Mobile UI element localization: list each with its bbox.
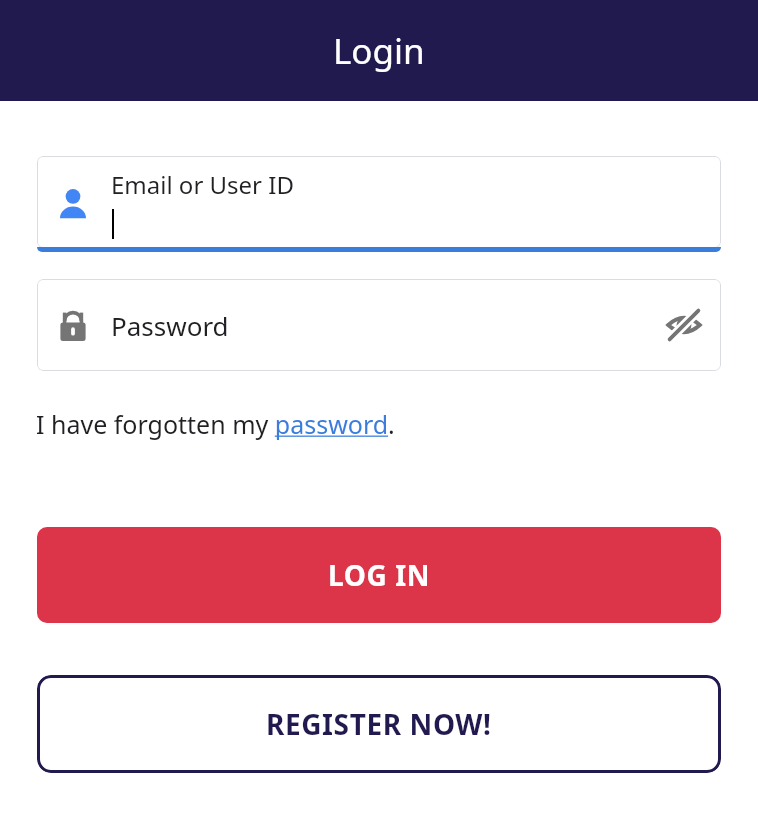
staticText: I have forgotten my password. — [36, 407, 395, 441]
other: Password — [52, 304, 94, 346]
button[interactable]: Password — [37, 279, 721, 371]
button[interactable]: Show password — [655, 296, 713, 354]
button[interactable]: LOG IN — [37, 527, 721, 623]
button[interactable]: User — [37, 156, 721, 252]
button[interactable]: I have forgotten my password. — [36, 407, 395, 441]
staticText: Login — [333, 27, 425, 75]
staticText: Password — [111, 308, 229, 343]
other: User — [52, 183, 94, 225]
staticText: REGISTER NOW! — [266, 705, 492, 743]
staticText: LOG IN — [328, 556, 431, 594]
button[interactable]: REGISTER NOW! — [37, 675, 721, 773]
staticText: Email or User ID — [111, 168, 294, 201]
